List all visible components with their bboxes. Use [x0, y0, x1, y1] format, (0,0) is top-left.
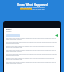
staticText: Excepteur sint occaecat cupidatat non pr… [6, 46, 58, 49]
staticText: you in one app [32, 8, 45, 10]
staticText: Summary [6, 31, 12, 33]
staticText: Lorem ipsum dolor sit amet consectetur a… [6, 62, 58, 65]
staticText: organised for [20, 8, 32, 10]
staticText: Quis nostrud exercitation ullamco labori… [6, 54, 58, 57]
staticText: Lorem ipsum dolor sit amet consectetur a… [6, 50, 58, 53]
staticText: Lorem ipsum dolor sit amet consectetur a… [6, 38, 58, 41]
staticText: Excepteur sint occaecat cupidatat non pr… [6, 58, 58, 61]
staticText: Quis nostrud exercitation ullamco labori… [6, 42, 58, 45]
staticText: Report [6, 28, 12, 30]
staticText: Know What Happened [17, 3, 48, 7]
staticText: Your complete medical history [20, 6, 45, 8]
